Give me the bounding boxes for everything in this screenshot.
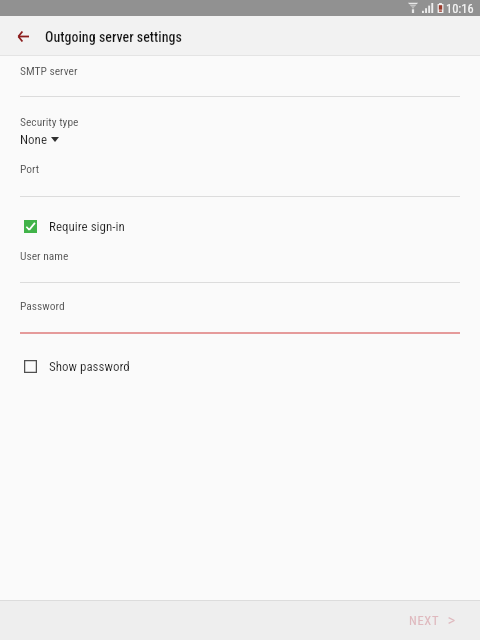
staticText: Outgoing server settings [45,29,182,45]
button[interactable]: Require sign-in [14,212,139,241]
staticText: None [20,132,47,147]
staticText: Require sign-in [49,219,125,234]
staticText: Password [20,299,65,312]
staticText: Show password [49,359,130,374]
staticText: SMTP server [20,64,78,77]
button[interactable]: None [20,132,59,147]
button[interactable]: NEXT [399,605,465,636]
button[interactable]: Show password [14,352,144,381]
staticText: User name [20,249,69,262]
staticText: 10:16 [446,1,474,16]
staticText: Security type [20,115,79,128]
staticText: Port [20,162,40,175]
button[interactable]: Back [6,16,40,56]
staticText: NEXT [409,613,440,628]
